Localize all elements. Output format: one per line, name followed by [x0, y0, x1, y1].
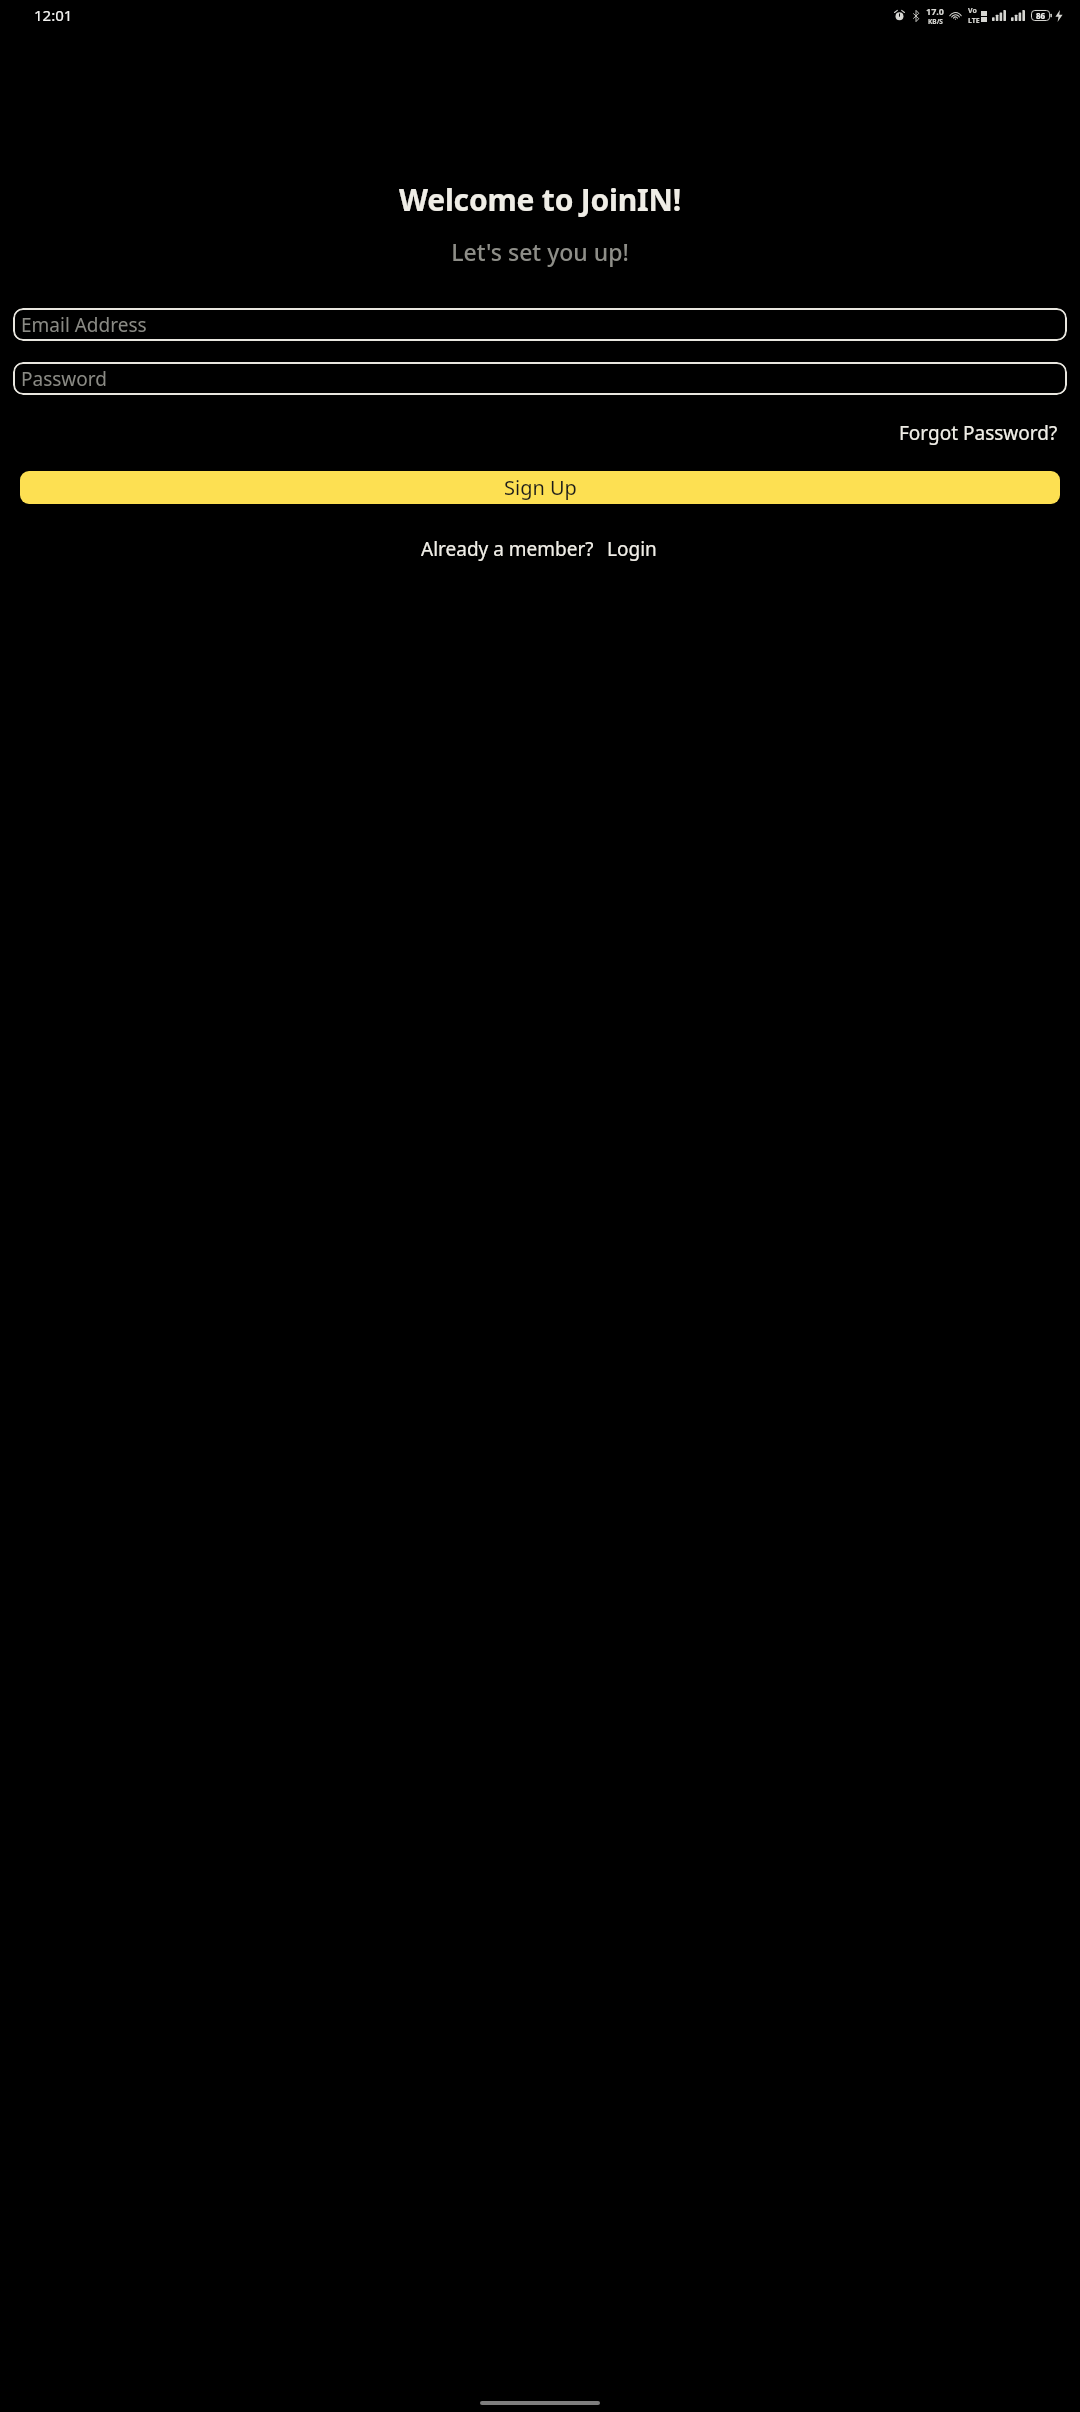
staticText: Email Address — [21, 312, 147, 338]
staticText: Login — [607, 536, 657, 562]
staticText: LTE — [968, 16, 980, 26]
button[interactable]: Email Address — [13, 308, 1067, 341]
staticText: Already a member? — [421, 536, 594, 562]
staticText: 12:01 — [34, 5, 73, 25]
staticText: Sign Up — [504, 474, 577, 501]
staticText: KB/S — [928, 17, 943, 26]
staticText: Forgot Password? — [899, 420, 1058, 446]
button[interactable]: Password — [13, 362, 1067, 395]
button[interactable]: Login — [605, 532, 659, 566]
staticText: Vo — [968, 6, 977, 16]
staticText: Password — [21, 366, 107, 392]
button[interactable]: Forgot Password? — [897, 416, 1060, 450]
staticText: Welcome to JoinIN! — [0, 179, 1080, 220]
button[interactable]: Sign Up — [20, 471, 1060, 504]
staticText: 86 — [1036, 10, 1046, 21]
staticText: Let's set you up! — [0, 236, 1080, 267]
staticText: 17.0 — [926, 5, 944, 17]
